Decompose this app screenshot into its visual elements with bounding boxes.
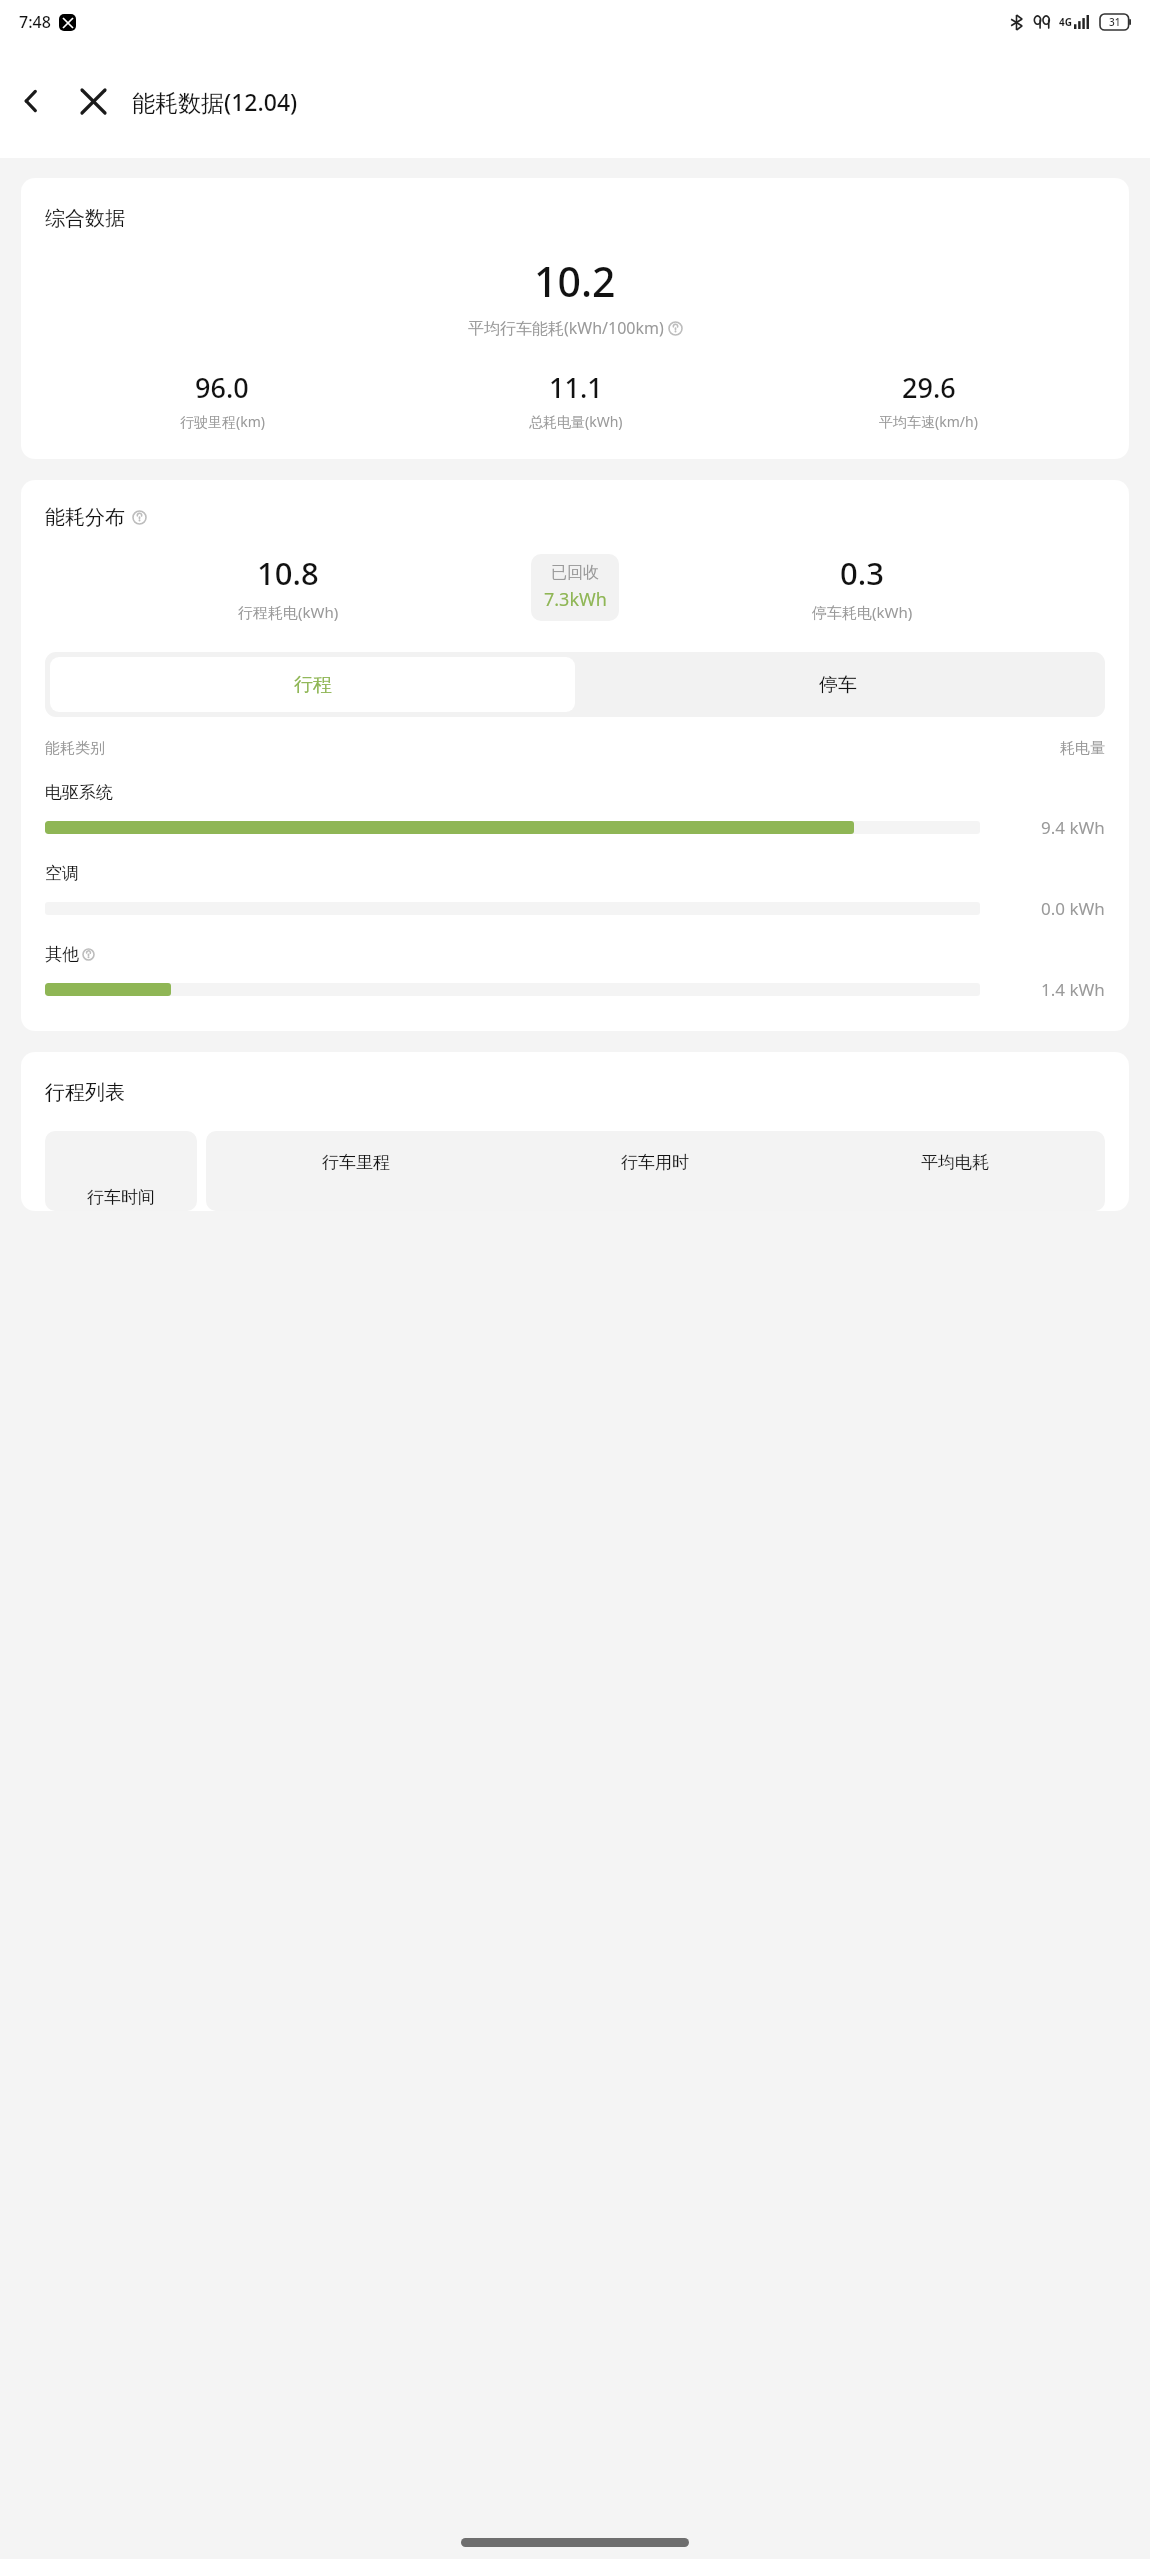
staticText: 其他 <box>45 944 79 965</box>
staticText: 能耗数据(12.04) <box>132 86 298 117</box>
staticText: 已回收 <box>551 563 599 583</box>
staticText: 1.4 kWh <box>1041 978 1105 1001</box>
staticText: 0.3 <box>840 552 884 594</box>
button[interactable]: 综合数据 <box>21 178 1129 459</box>
staticText: 11.1 <box>549 369 603 406</box>
staticText: 行程列表 <box>45 1080 125 1105</box>
staticText: 10.8 <box>257 552 319 594</box>
staticText: 9.4 kWh <box>1041 816 1105 839</box>
button[interactable]: 停车 <box>575 657 1100 712</box>
staticText: 停车耗电(kWh) <box>812 602 913 622</box>
staticText: 能耗类别 <box>45 739 105 758</box>
staticText: 空调 <box>45 863 79 884</box>
staticText: 31 <box>1109 15 1121 29</box>
button[interactable]: 平均电耗 <box>805 1131 1105 1211</box>
staticText: 停车 <box>819 673 857 697</box>
staticText: 96.0 <box>195 369 249 406</box>
staticText: 总耗电量(kWh) <box>529 412 623 431</box>
staticText: 行车时间 <box>87 1187 155 1208</box>
staticText: 能耗分布 <box>45 505 125 530</box>
staticText: 平均行车能耗(kWh/100km) <box>468 317 664 339</box>
button[interactable]: Close <box>62 44 124 158</box>
button[interactable]: 行车用时 <box>505 1131 805 1211</box>
staticText: 行驶里程(km) <box>180 412 265 431</box>
staticText: 7.3kWh <box>544 587 607 612</box>
staticText: 7:48 <box>19 11 51 33</box>
button[interactable]: 行车里程 <box>206 1131 505 1211</box>
staticText: 0.0 kWh <box>1041 897 1105 920</box>
staticText: 综合数据 <box>45 206 125 231</box>
staticText: 行车用时 <box>621 1152 689 1173</box>
staticText: 10.2 <box>534 253 616 309</box>
button[interactable]: Back <box>0 44 62 158</box>
staticText: 电驱系统 <box>45 782 113 803</box>
button[interactable]: 行程 <box>50 657 575 712</box>
staticText: 行程 <box>294 673 332 697</box>
staticText: 行车里程 <box>322 1152 390 1173</box>
staticText: 平均电耗 <box>921 1152 989 1173</box>
staticText: 平均车速(km/h) <box>879 412 978 431</box>
staticText: 29.6 <box>902 369 956 406</box>
staticText: 行程耗电(kWh) <box>238 602 339 622</box>
staticText: 耗电量 <box>1060 739 1105 758</box>
staticText: 4G <box>1059 15 1072 29</box>
button[interactable]: 行车时间 <box>45 1131 197 1211</box>
